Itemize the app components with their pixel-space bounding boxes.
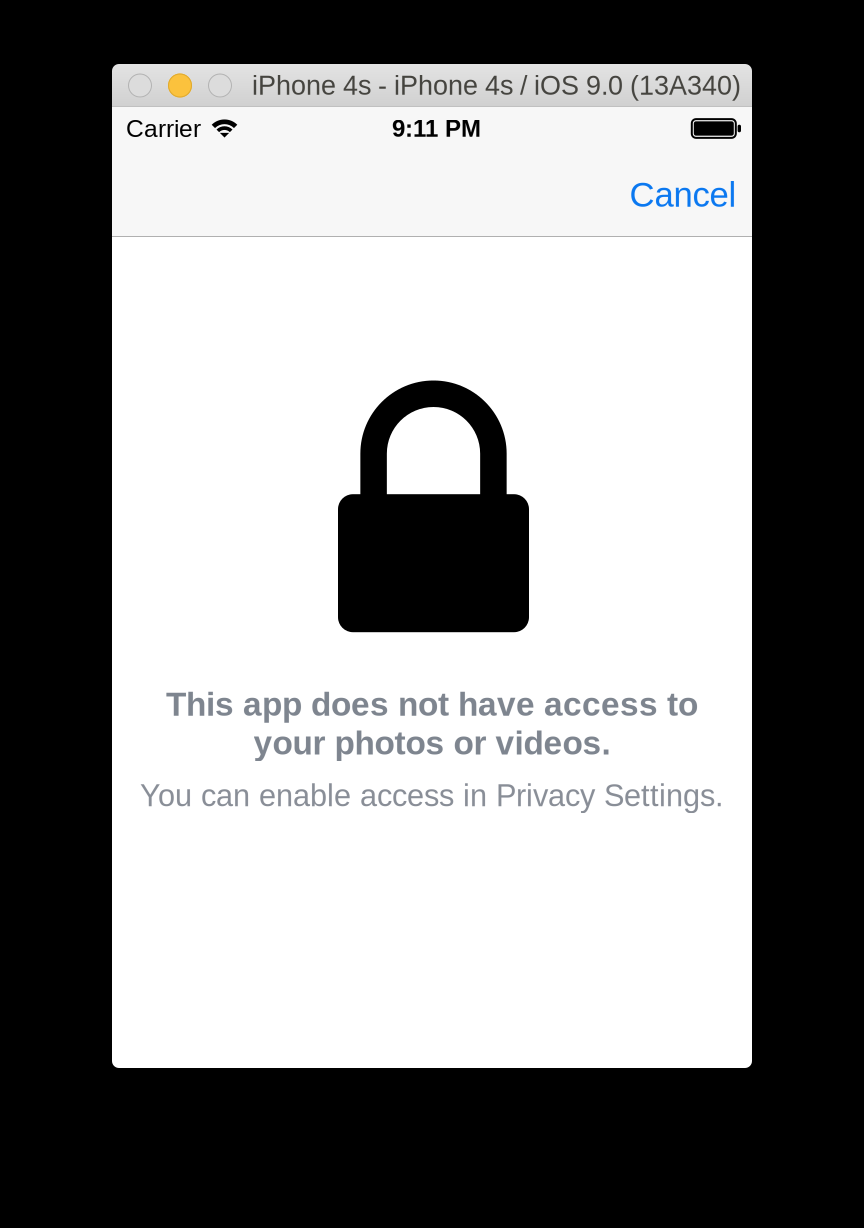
staticText: Cancel bbox=[629, 175, 736, 214]
button[interactable]: Zoom bbox=[208, 73, 232, 97]
staticText: This app does not have access to bbox=[166, 685, 698, 723]
button[interactable]: Close bbox=[128, 73, 152, 97]
staticText: 9:11 PM bbox=[392, 115, 481, 142]
button[interactable]: Minimize bbox=[168, 73, 192, 97]
button[interactable]: Cancel bbox=[609, 170, 752, 237]
staticText: iPhone 4s - iPhone 4s / iOS 9.0 (13A340) bbox=[252, 70, 741, 101]
staticText: Carrier bbox=[126, 115, 201, 142]
staticText: your photos or videos. bbox=[253, 724, 610, 761]
staticText: You can enable access in Privacy Setting… bbox=[140, 778, 724, 813]
